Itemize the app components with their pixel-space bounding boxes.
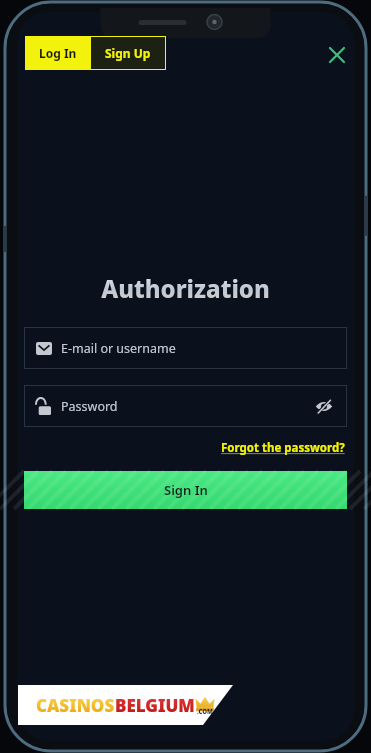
button[interactable]: Password bbox=[24, 385, 347, 427]
button[interactable]: E-mail or username bbox=[24, 327, 347, 369]
button[interactable]: Sign Up bbox=[90, 36, 166, 70]
button[interactable]: Close bbox=[322, 40, 352, 70]
staticText: E-mail or username bbox=[61, 340, 176, 357]
button[interactable]: Show password bbox=[313, 395, 335, 417]
staticText: Forgot the password? bbox=[221, 440, 345, 456]
staticText: Authorization bbox=[101, 272, 270, 305]
staticText: Sign In bbox=[164, 481, 208, 499]
staticText: BELGIUM bbox=[115, 694, 195, 717]
button[interactable]: Sign In bbox=[24, 471, 347, 509]
staticText: Log In bbox=[39, 45, 77, 61]
staticText: Password bbox=[61, 398, 118, 415]
button[interactable]: Forgot the password? bbox=[219, 438, 347, 458]
staticText: .COM bbox=[197, 708, 213, 716]
staticText: CASINOS bbox=[36, 694, 115, 717]
staticText: Sign Up bbox=[105, 45, 151, 61]
button[interactable]: Log In bbox=[25, 36, 90, 70]
